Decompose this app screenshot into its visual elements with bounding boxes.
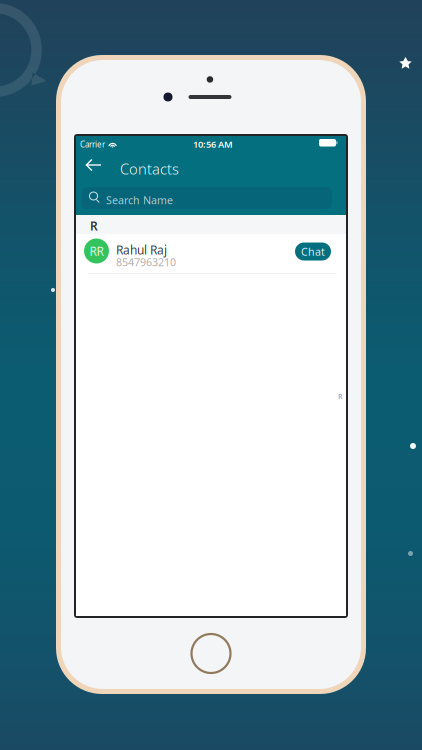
staticText: 10:56 AM — [193, 138, 233, 150]
staticText: Chat — [301, 244, 325, 259]
button[interactable]: Back — [80, 151, 108, 179]
staticText: Rahul Raj — [116, 242, 167, 258]
staticText: R — [338, 392, 342, 401]
staticText: 8547963210 — [116, 255, 176, 269]
staticText: R — [90, 218, 98, 234]
staticText: RR — [89, 243, 103, 259]
button[interactable]: Chat — [295, 242, 331, 260]
button[interactable]: Search Name — [82, 187, 332, 209]
staticText: Search Name — [106, 193, 173, 207]
button[interactable]: RR — [76, 234, 346, 276]
staticText: Carrier — [80, 139, 105, 150]
staticText: Contacts — [120, 159, 179, 178]
